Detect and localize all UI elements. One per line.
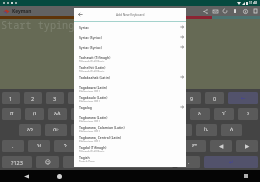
button[interactable]: ም bbox=[184, 140, 206, 152]
staticText: Tagish Deva bbox=[79, 160, 95, 162]
button[interactable]: 4 bbox=[68, 92, 86, 104]
button[interactable]: ሸ bbox=[2, 108, 21, 120]
button[interactable]: · bbox=[2, 140, 24, 152]
button[interactable]: ተ bbox=[94, 108, 114, 120]
button[interactable]: ፍ bbox=[96, 124, 117, 136]
button[interactable]: 5 bbox=[90, 92, 109, 104]
staticText: Tachawit (Tifinagh) bbox=[79, 55, 111, 60]
button[interactable]: ሰ፦ bbox=[45, 124, 67, 136]
button[interactable]: Share bbox=[200, 6, 210, 16]
button[interactable]: Tagish bbox=[74, 152, 186, 162]
staticText: Tifinagh (Full) Basic bbox=[79, 150, 105, 152]
staticText: ም bbox=[192, 143, 198, 149]
staticText: Keyman bbox=[12, 8, 32, 15]
button[interactable]: ጨ bbox=[80, 140, 102, 152]
button[interactable]: ፐ bbox=[214, 108, 234, 120]
staticText: 5 bbox=[98, 95, 102, 102]
button[interactable]: Tadaksahak (Latin) bbox=[74, 72, 186, 82]
staticText: Tifinagh (Full) Basic bbox=[79, 70, 105, 72]
button[interactable]: ◀ bbox=[210, 140, 232, 152]
button[interactable]: Phone bbox=[230, 6, 240, 16]
staticText: Start typing bbox=[1, 18, 75, 32]
button[interactable]: Tachawit (Tifinagh) bbox=[74, 52, 186, 62]
button[interactable]: 9 bbox=[182, 92, 201, 104]
button[interactable]: 1 bbox=[2, 92, 20, 104]
button[interactable]: Tagabawa (Latin) bbox=[74, 82, 186, 92]
staticText: Syriac (Syriac) bbox=[79, 45, 102, 50]
staticText: ጨ bbox=[88, 143, 94, 149]
button[interactable]: Back bbox=[20, 170, 32, 182]
button[interactable]: Syriac (Syriac) bbox=[74, 42, 186, 52]
button[interactable]: Refresh bbox=[220, 6, 230, 16]
button[interactable]: ሠ bbox=[71, 108, 90, 120]
button[interactable]: ዝ bbox=[28, 140, 50, 152]
button[interactable]: አለ bbox=[48, 108, 67, 120]
button[interactable]: ገ bbox=[121, 124, 142, 136]
button[interactable]: Tagbanwa (Latin) bbox=[74, 112, 186, 122]
staticText: ሰ፦ bbox=[53, 127, 60, 133]
staticText: Tifinagh (Full) Basic bbox=[79, 60, 105, 62]
button[interactable]: ነ bbox=[238, 108, 258, 120]
button[interactable]: Mail bbox=[210, 6, 220, 16]
button[interactable]: ጀ bbox=[171, 124, 192, 136]
button[interactable]: Tachelhit (Latin) bbox=[74, 62, 186, 72]
button[interactable]: Tagakaulo (Latin) bbox=[74, 92, 186, 102]
staticText: 9 bbox=[190, 95, 194, 102]
button[interactable]: ደ bbox=[71, 124, 92, 136]
button[interactable]: Syriac (Syriac) bbox=[74, 32, 186, 42]
staticText: Philippines (SIL) bbox=[79, 90, 100, 92]
button[interactable]: Info bbox=[240, 6, 250, 16]
button[interactable]: በ bbox=[25, 108, 44, 120]
staticText: Tagbanwa, Calamian (Latin) bbox=[79, 125, 125, 130]
staticText: ▶ bbox=[245, 143, 250, 149]
button[interactable]: ☺ bbox=[36, 156, 59, 168]
button[interactable]: ን bbox=[54, 140, 76, 152]
button[interactable]: ኦ bbox=[190, 108, 210, 120]
staticText: ኦ bbox=[198, 111, 202, 117]
button[interactable]: · bbox=[177, 156, 200, 168]
button[interactable]: Syriac bbox=[74, 22, 186, 32]
staticText: 3 bbox=[53, 95, 57, 102]
button[interactable]: ለ bbox=[221, 124, 242, 136]
staticText: በ bbox=[33, 111, 37, 117]
button[interactable]: ← bbox=[228, 92, 258, 104]
staticText: Tagabawa (Latin) bbox=[79, 85, 108, 90]
button[interactable]: 0 bbox=[205, 92, 224, 104]
button[interactable]: Back bbox=[74, 8, 87, 21]
staticText: ← bbox=[241, 95, 246, 101]
button[interactable]: Tagbanwa, Calamian (Latin) bbox=[74, 122, 186, 132]
button[interactable]: ?123 bbox=[2, 156, 32, 168]
button[interactable]: ▶ bbox=[236, 140, 258, 152]
staticText: ተ bbox=[102, 111, 106, 117]
button[interactable] bbox=[63, 156, 173, 168]
button[interactable]: አን bbox=[19, 124, 41, 136]
button[interactable]: Tagalog bbox=[74, 102, 186, 112]
button[interactable]: 3 bbox=[46, 92, 64, 104]
button[interactable]: 2 bbox=[24, 92, 42, 104]
button[interactable]: More bbox=[250, 6, 260, 16]
staticText: ሠ bbox=[78, 111, 83, 117]
button[interactable]: Home bbox=[53, 170, 65, 182]
button[interactable]: ኪ bbox=[196, 124, 217, 136]
button[interactable]: Tagbanwa, Central (Latin) bbox=[74, 132, 186, 142]
staticText: 2 bbox=[31, 95, 35, 102]
staticText: Tagbanwa, Central (Latin) bbox=[79, 135, 122, 140]
button[interactable]: Tagdal (Tifinagh) bbox=[74, 142, 186, 152]
button[interactable]: Recents bbox=[240, 170, 252, 182]
